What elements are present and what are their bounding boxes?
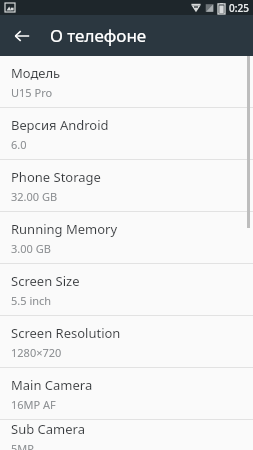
- button[interactable]: Модель: [0, 56, 253, 107]
- button[interactable]: Main Camera: [0, 368, 253, 419]
- staticText: U15 Pro: [11, 85, 53, 100]
- button[interactable]: Screen Resolution: [0, 316, 253, 367]
- staticText: 0:25: [229, 1, 249, 15]
- staticText: 5MP: [11, 441, 34, 450]
- staticText: 1280×720: [11, 345, 62, 360]
- button[interactable]: Версия Android: [0, 108, 253, 159]
- staticText: Running Memory: [11, 220, 118, 238]
- staticText: Main Camera: [11, 376, 93, 394]
- staticText: Screen Resolution: [11, 324, 121, 342]
- staticText: Модель: [11, 64, 61, 82]
- button[interactable]: Back: [8, 22, 36, 50]
- button[interactable]: Sub Camera: [0, 420, 253, 450]
- staticText: Screen Size: [11, 272, 80, 290]
- staticText: Phone Storage: [11, 168, 101, 186]
- button[interactable]: Screen Size: [0, 264, 253, 315]
- staticText: Sub Camera: [11, 420, 85, 438]
- staticText: 3.00 GB: [11, 241, 51, 256]
- staticText: 6.0: [11, 137, 27, 152]
- staticText: 5.5 inch: [11, 293, 52, 308]
- button[interactable]: Running Memory: [0, 212, 253, 263]
- staticText: О телефоне: [50, 24, 147, 47]
- button[interactable]: Phone Storage: [0, 160, 253, 211]
- staticText: 16MP AF: [11, 397, 56, 412]
- staticText: 32.00 GB: [11, 189, 58, 204]
- staticText: Версия Android: [11, 116, 109, 134]
